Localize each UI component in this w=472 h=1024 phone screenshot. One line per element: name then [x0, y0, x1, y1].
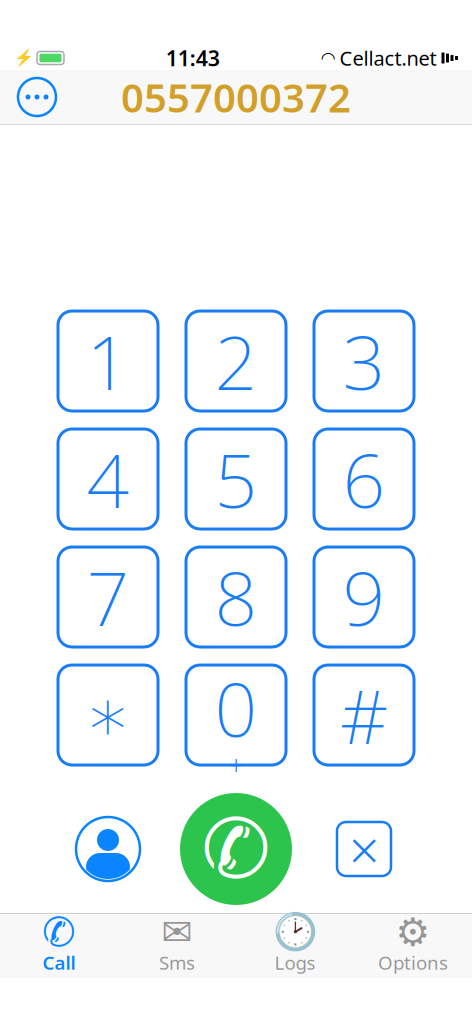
- staticText: 2: [214, 311, 257, 411]
- button[interactable]: 9: [314, 547, 414, 647]
- button[interactable]: ✆: [0, 917, 118, 975]
- staticText: ✉: [161, 911, 192, 953]
- staticText: ×: [349, 814, 379, 884]
- button[interactable]: #: [314, 665, 414, 765]
- button[interactable]: 8: [186, 547, 286, 647]
- staticText: ✆: [42, 909, 76, 955]
- button[interactable]: 1: [58, 311, 158, 411]
- staticText: Logs: [274, 950, 315, 975]
- staticText: ⚙: [395, 910, 430, 954]
- staticText: 🕑: [272, 911, 317, 953]
- button[interactable]: 0: [186, 665, 286, 765]
- button[interactable]: More options: [18, 78, 56, 116]
- staticText: Call: [42, 950, 75, 975]
- staticText: 11:43: [166, 44, 220, 72]
- button[interactable]: 7: [58, 547, 158, 647]
- staticText: ⚡: [14, 49, 34, 67]
- staticText: 9: [342, 547, 385, 647]
- staticText: #: [340, 665, 388, 765]
- button[interactable]: 3: [314, 311, 414, 411]
- button[interactable]: ✉: [118, 917, 236, 975]
- staticText: ∗: [84, 673, 131, 757]
- button[interactable]: Contacts: [76, 817, 140, 881]
- staticText: 8: [214, 547, 257, 647]
- button[interactable]: ⚙: [354, 917, 472, 975]
- staticText: Options: [378, 950, 448, 975]
- staticText: Cellact.net: [339, 45, 436, 71]
- button[interactable]: 2: [186, 311, 286, 411]
- button[interactable]: 5: [186, 429, 286, 529]
- staticText: 0557000372: [121, 70, 351, 123]
- button[interactable]: 4: [58, 429, 158, 529]
- staticText: 1: [86, 311, 129, 411]
- staticText: 6: [342, 429, 385, 529]
- button[interactable]: Call: [180, 793, 292, 905]
- staticText: 5: [214, 429, 257, 529]
- staticText: ◠: [321, 48, 334, 68]
- staticText: 0: [214, 658, 257, 758]
- staticText: 4: [86, 429, 129, 529]
- button[interactable]: 🕑: [236, 917, 354, 975]
- button[interactable]: Delete: [325, 819, 403, 879]
- button[interactable]: ∗: [58, 665, 158, 765]
- staticText: +: [228, 747, 243, 782]
- staticText: 3: [342, 311, 385, 411]
- staticText: ✆: [201, 802, 270, 896]
- staticText: 7: [86, 547, 129, 647]
- button[interactable]: 6: [314, 429, 414, 529]
- staticText: Sms: [159, 950, 195, 975]
